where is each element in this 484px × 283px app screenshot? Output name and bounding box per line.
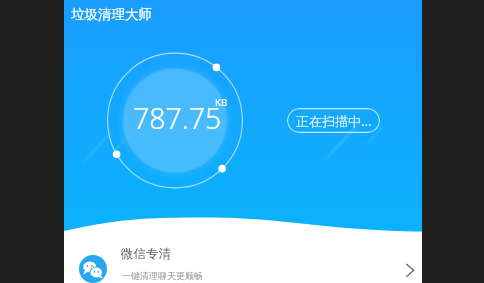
button[interactable]: More xyxy=(401,258,425,282)
staticText: 正在扫描中... xyxy=(296,112,372,130)
staticText: 一键清理聊天更顺畅 xyxy=(122,270,203,281)
staticText: 787.75 xyxy=(133,99,222,138)
button[interactable]: 微信专清 xyxy=(64,238,422,283)
staticText: KB xyxy=(215,96,228,109)
staticText: 垃圾清理大师 xyxy=(71,6,152,23)
button[interactable]: 正在扫描中... xyxy=(287,108,380,133)
staticText: 微信专清 xyxy=(121,246,171,262)
